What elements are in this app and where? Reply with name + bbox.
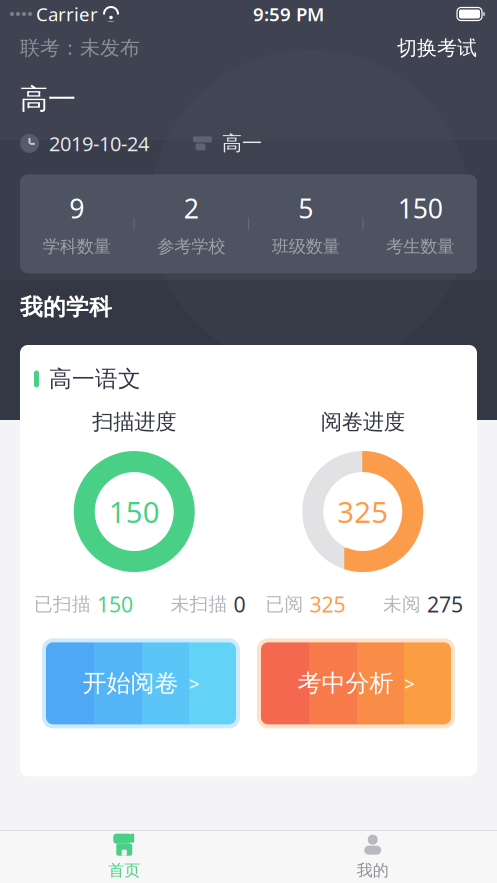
staticText: 考中分析 — [297, 669, 393, 698]
staticText: 高一 — [222, 131, 262, 156]
staticText: > — [403, 670, 414, 697]
staticText: 150 — [97, 590, 133, 618]
staticText: 切换考试 — [397, 36, 477, 60]
staticText: 开始阅卷 — [82, 669, 178, 698]
staticText: 扫描进度 — [92, 409, 176, 435]
staticText: 考生数量 — [386, 236, 454, 257]
staticText: 阅卷进度 — [321, 409, 405, 435]
button[interactable]: 切换考试 — [377, 26, 497, 70]
staticText: 325 — [309, 590, 345, 618]
staticText: 我的学科 — [20, 293, 112, 321]
staticText: 325 — [337, 492, 388, 531]
staticText: 首页 — [108, 861, 140, 880]
staticText: 9:59 PM — [253, 2, 324, 26]
staticText: 150 — [109, 492, 160, 531]
button[interactable]: 考中分析 — [257, 638, 455, 728]
staticText: 0 — [233, 590, 245, 618]
staticText: 班级数量 — [272, 236, 340, 257]
staticText: 275 — [427, 590, 463, 618]
staticText: 已阅 — [265, 593, 303, 616]
staticText: 未扫描 — [170, 593, 227, 616]
button[interactable]: 首页 — [0, 827, 248, 883]
staticText: Carrier — [36, 2, 98, 26]
staticText: 参考学校 — [157, 236, 225, 257]
staticText: 已扫描 — [34, 593, 91, 616]
staticText: 9 — [69, 190, 84, 226]
staticText: 2019-10-24 — [49, 130, 149, 157]
staticText: 我的 — [357, 861, 389, 880]
button[interactable]: 开始阅卷 — [42, 638, 240, 728]
staticText: > — [188, 670, 199, 697]
staticText: 未阅 — [383, 593, 421, 616]
button[interactable]: 我的 — [248, 827, 497, 883]
staticText: 2 — [184, 190, 199, 226]
staticText: 联考：未发布 — [20, 36, 140, 60]
staticText: 学科数量 — [43, 236, 111, 257]
staticText: 高一 — [20, 82, 76, 116]
staticText: 高一语文 — [49, 365, 141, 393]
staticText: 150 — [398, 190, 443, 226]
staticText: 5 — [298, 190, 313, 226]
